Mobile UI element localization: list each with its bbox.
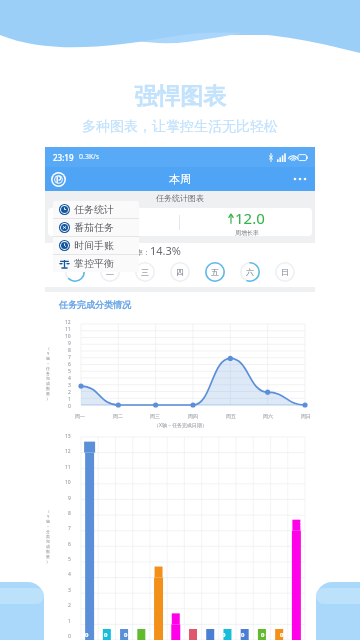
staticText: 6 xyxy=(68,541,71,548)
staticText: 数 xyxy=(46,386,50,391)
staticText: 13 xyxy=(65,433,71,440)
staticText: 0 xyxy=(85,631,89,639)
staticText: 9 xyxy=(68,340,71,347)
staticText: 7 xyxy=(300,520,304,528)
staticText: 二 xyxy=(106,267,114,277)
staticText: 0 xyxy=(241,631,245,639)
button[interactable]: 番茄任务 xyxy=(53,219,139,236)
button[interactable]: 打开菜单 xyxy=(51,172,66,187)
button[interactable]: 12.0 xyxy=(180,208,312,236)
staticText: 1 xyxy=(68,618,71,625)
staticText: 数 xyxy=(46,549,50,554)
staticText: 本周 xyxy=(169,172,191,186)
staticText: 成 xyxy=(46,381,50,386)
staticText: 4 xyxy=(68,375,71,382)
staticText: Y xyxy=(47,514,50,519)
staticText: － xyxy=(46,524,50,529)
staticText: 8 xyxy=(68,510,71,517)
staticText: 任 xyxy=(46,366,50,371)
staticText: 3 xyxy=(68,382,71,389)
staticText: 23:19 xyxy=(53,152,74,163)
staticText: 日 xyxy=(281,267,289,277)
staticText: 12 xyxy=(65,448,71,455)
staticText: 7 xyxy=(68,354,71,361)
button[interactable]: 掌控平衡 xyxy=(53,255,139,272)
staticText: 量 xyxy=(46,391,50,396)
staticText: 周增长率 xyxy=(235,229,259,236)
staticText: 1次 xyxy=(94,243,112,257)
button[interactable]: 时间手账 xyxy=(53,237,139,254)
staticText: 0 xyxy=(68,403,71,410)
staticText: 2 xyxy=(68,602,71,609)
staticText: 7 xyxy=(68,525,71,532)
button[interactable]: 六 xyxy=(239,261,261,283)
staticText: 达标次数： xyxy=(59,248,94,257)
button[interactable]: 五 xyxy=(204,261,226,283)
staticText: 六 xyxy=(246,267,254,277)
staticText: 5 xyxy=(68,368,71,375)
staticText: 5 xyxy=(68,556,71,563)
staticText: 达标率： xyxy=(122,248,150,257)
staticText: 周二 xyxy=(113,413,123,419)
staticText: 周六 xyxy=(263,413,273,419)
staticText: 0 xyxy=(124,631,128,639)
staticText: 10 xyxy=(65,333,71,340)
staticText: 11 xyxy=(65,326,71,333)
staticText: 1.71 xyxy=(99,208,129,228)
staticText: ） xyxy=(46,559,50,564)
staticText: 量 xyxy=(46,554,50,559)
staticText: 周一 xyxy=(75,413,85,419)
staticText: 轴 xyxy=(46,356,50,361)
staticText: － xyxy=(46,361,50,366)
staticText: 6 xyxy=(68,361,71,368)
staticText: 12.0 xyxy=(235,208,265,228)
button[interactable]: 三 xyxy=(134,261,156,283)
staticText: （ xyxy=(46,346,50,351)
staticText: 11 xyxy=(65,464,71,471)
button[interactable]: 一 xyxy=(64,261,86,283)
staticText: 周五 xyxy=(226,413,236,419)
staticText: 类 xyxy=(46,534,50,539)
staticText: 完 xyxy=(46,376,50,381)
staticText: （X轴－任务完成日期） xyxy=(154,422,207,429)
staticText: ） xyxy=(46,396,50,401)
staticText: 番茄任务 xyxy=(74,221,114,234)
staticText: 8 xyxy=(68,347,71,354)
staticText: 0 xyxy=(182,631,186,639)
staticText: 多种图表，让掌控生活无比轻松 xyxy=(0,118,360,136)
staticText: 12 xyxy=(65,319,71,326)
staticText: 成 xyxy=(46,544,50,549)
staticText: 四 xyxy=(176,267,184,277)
staticText: 完 xyxy=(46,539,50,544)
staticText: 2 xyxy=(68,389,71,396)
staticText: 0 xyxy=(104,631,108,639)
staticText: 4 xyxy=(68,571,71,578)
staticText: 掌控平衡 xyxy=(74,257,114,270)
staticText: 0 xyxy=(261,631,265,639)
button[interactable]: 更多选项 xyxy=(291,171,309,187)
staticText: 周日 xyxy=(301,413,311,419)
staticText: 本周均数 xyxy=(102,229,126,236)
staticText: 0 xyxy=(280,631,284,639)
staticText: 1 xyxy=(68,396,71,403)
staticText: 务 xyxy=(46,371,50,376)
staticText: 时间手账 xyxy=(74,239,114,252)
staticText: 任务统计图表 xyxy=(156,193,204,203)
button[interactable]: 二 xyxy=(99,261,121,283)
staticText: Y xyxy=(47,351,50,356)
staticText: 0 xyxy=(222,631,226,639)
button[interactable]: 日 xyxy=(274,261,296,283)
staticText: 分 xyxy=(46,529,50,534)
button[interactable]: 任务统计 xyxy=(53,201,139,218)
staticText: 一 xyxy=(71,267,79,277)
staticText: （ xyxy=(46,509,50,514)
staticText: 0 xyxy=(68,633,71,640)
button[interactable]: 四 xyxy=(169,261,191,283)
button[interactable]: 1.71 xyxy=(48,208,179,236)
staticText: 轴 xyxy=(46,519,50,524)
staticText: 任务完成分类情况 xyxy=(59,299,131,310)
